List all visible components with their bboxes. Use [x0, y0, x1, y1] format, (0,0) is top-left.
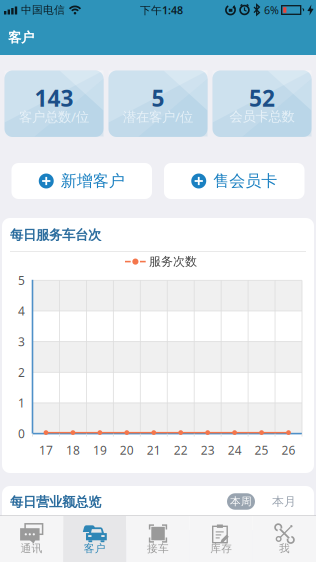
staticText: 143: [34, 83, 73, 113]
staticText: 6%: [264, 3, 279, 17]
staticText: 4: [18, 303, 25, 319]
staticText: 21: [147, 442, 161, 458]
button[interactable]: 我: [253, 516, 316, 562]
staticText: 会员卡总数: [229, 108, 294, 125]
staticText: 新增客户: [61, 171, 125, 191]
staticText: 19: [93, 442, 107, 458]
staticText: 5: [151, 83, 164, 113]
staticText: 库存: [210, 542, 232, 555]
staticText: 本月: [272, 494, 296, 509]
staticText: 26: [281, 442, 295, 458]
button[interactable]: 通讯: [0, 516, 63, 562]
staticText: 潜在客户/位: [123, 108, 193, 125]
button[interactable]: 本周: [227, 493, 255, 510]
staticText: 我: [279, 542, 290, 555]
staticText: 0: [18, 426, 25, 441]
staticText: 本周: [230, 495, 252, 508]
staticText: 5: [18, 272, 25, 288]
staticText: 服务次数: [149, 254, 197, 269]
staticText: 18: [66, 442, 80, 458]
staticText: 52: [249, 83, 275, 113]
button[interactable]: 本月: [272, 494, 296, 509]
staticText: 3: [18, 334, 25, 350]
staticText: 下午1:48: [140, 3, 183, 17]
staticText: 24: [228, 442, 242, 458]
staticText: 接车: [147, 542, 169, 555]
staticText: 售会员卡: [213, 171, 277, 191]
staticText: 17: [39, 442, 53, 458]
staticText: 客户总数/位: [19, 108, 89, 125]
staticText: 2: [18, 364, 25, 380]
staticText: 中国电信: [21, 3, 65, 16]
button[interactable]: 库存: [190, 516, 253, 562]
button[interactable]: 新增客户: [11, 163, 152, 199]
button[interactable]: 接车: [126, 516, 190, 562]
button[interactable]: 客户: [63, 516, 126, 562]
staticText: 23: [201, 442, 215, 458]
staticText: 客户: [84, 542, 106, 555]
staticText: 22: [174, 442, 188, 458]
staticText: 20: [120, 442, 134, 458]
button[interactable]: 售会员卡: [164, 163, 304, 199]
staticText: 每日营业额总览: [10, 494, 101, 510]
staticText: 1: [18, 395, 25, 411]
staticText: 每日服务车台次: [10, 227, 101, 243]
staticText: 25: [255, 442, 269, 458]
staticText: 通讯: [21, 542, 43, 555]
staticText: 客户: [8, 29, 34, 46]
